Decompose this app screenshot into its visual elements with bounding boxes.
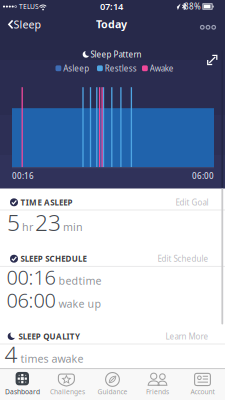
staticText: times awake [20, 352, 83, 366]
staticText: SLEEP SCHEDULE [20, 253, 86, 264]
staticText: Today [96, 17, 127, 31]
staticText: 06:00 [192, 171, 214, 181]
button[interactable]: Expand chart [201, 49, 223, 71]
staticText: Restless [105, 63, 137, 74]
staticText: Learn More [165, 331, 208, 342]
staticText: Friends [146, 387, 169, 396]
staticText: 23 [35, 207, 61, 237]
staticText: min [63, 220, 83, 234]
staticText: Awake [150, 63, 174, 74]
staticText: hr [22, 220, 33, 234]
staticText: TELUS [19, 2, 39, 11]
staticText: Edit Schedule [157, 253, 208, 264]
staticText: Asleep [63, 63, 89, 74]
button[interactable]: Guidance [90, 368, 135, 400]
staticText: 00:16 [6, 264, 55, 290]
button[interactable]: Challenges [45, 368, 90, 400]
staticText: Edit Goal [175, 197, 208, 208]
button[interactable]: Account [180, 368, 225, 400]
staticText: 5 [7, 207, 20, 237]
staticText: 06:00 [6, 287, 55, 313]
button[interactable]: More options [195, 19, 221, 35]
staticText: 4 [4, 339, 17, 369]
staticText: Sleep [13, 17, 41, 31]
button[interactable]: Back [0, 12, 44, 38]
staticText: Account [190, 387, 214, 396]
staticText: 88% [184, 1, 201, 12]
staticText: TIME ASLEEP [20, 197, 72, 208]
staticText: SLEEP QUALITY [18, 331, 80, 342]
staticText: wake up [58, 296, 101, 311]
button[interactable]: Edit Schedule [146, 252, 208, 266]
staticText: Dashboard [5, 387, 40, 396]
button[interactable]: Friends [135, 368, 180, 400]
staticText: 07:14 [100, 0, 123, 13]
button[interactable]: Dashboard [0, 368, 45, 400]
staticText: 00:16 [12, 171, 34, 181]
staticText: Sleep Pattern [90, 49, 141, 60]
button[interactable]: Learn More [146, 329, 208, 343]
staticText: Challenges [50, 387, 85, 396]
button[interactable]: Edit Goal [146, 195, 208, 209]
staticText: bedtime [58, 273, 101, 288]
staticText: Guidance [97, 387, 127, 396]
